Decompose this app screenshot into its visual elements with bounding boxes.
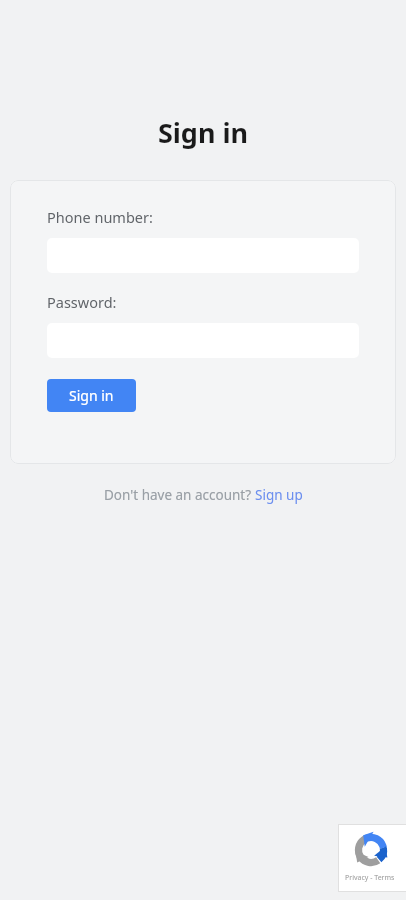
button[interactable]: Sign in: [47, 379, 136, 412]
staticText: Don't have an account?: [104, 486, 255, 504]
staticText: Phone number:: [47, 207, 153, 227]
staticText: Sign in: [0, 114, 406, 151]
staticText: Password:: [47, 292, 117, 312]
button[interactable]: reCAPTCHA Privacy and Terms: [338, 824, 406, 892]
staticText: Privacy - Terms: [345, 873, 395, 883]
staticText: Sign in: [69, 386, 114, 405]
staticText: Sign up: [255, 486, 303, 504]
button[interactable]: Sign up: [255, 486, 303, 504]
